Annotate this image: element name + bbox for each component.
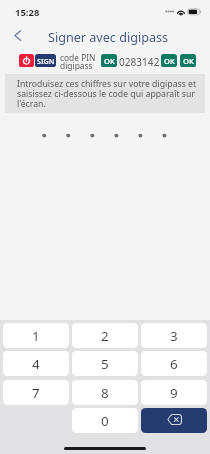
staticText: OK xyxy=(104,56,115,66)
staticText: 4 xyxy=(32,355,40,373)
button[interactable]: 8 xyxy=(72,380,138,405)
staticText: 9 xyxy=(170,384,178,402)
staticText: 1 xyxy=(32,327,40,345)
button[interactable]: Back xyxy=(3,23,31,47)
button[interactable]: 7 xyxy=(3,380,69,405)
staticText: 5 xyxy=(101,355,109,373)
button[interactable]: 3 xyxy=(141,323,207,348)
staticText: OK xyxy=(164,56,175,66)
button[interactable]: 2 xyxy=(72,323,138,348)
staticText: 15:28 xyxy=(15,6,40,19)
button[interactable]: 0 xyxy=(72,408,138,433)
staticText: 7 xyxy=(32,384,40,402)
staticText: 8 xyxy=(101,384,109,402)
button[interactable]: 5 xyxy=(72,351,138,376)
button[interactable]: 4 xyxy=(3,351,69,376)
staticText: OK xyxy=(183,56,194,66)
staticText: 3 xyxy=(170,327,178,345)
staticText: 0283142 xyxy=(119,55,160,69)
button[interactable]: 1 xyxy=(3,323,69,348)
staticText: code PIN digipass xyxy=(60,52,96,72)
button[interactable]: 9 xyxy=(141,380,207,405)
button[interactable]: Backspace xyxy=(141,408,207,433)
button[interactable]: 6 xyxy=(141,351,207,376)
staticText: 6 xyxy=(170,355,178,373)
staticText: 2 xyxy=(101,327,109,345)
staticText: Signer avec digipass xyxy=(48,29,169,46)
staticText: Introduisez ces chiffres sur votre digip… xyxy=(17,78,197,109)
staticText: SIGN xyxy=(37,56,55,66)
staticText: 0 xyxy=(101,412,109,430)
